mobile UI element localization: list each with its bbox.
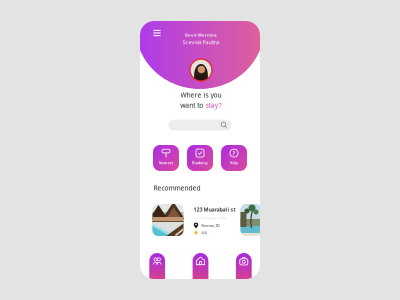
staticText: Nearest [158,160,173,165]
button[interactable]: Menu [151,27,163,39]
staticText: Sleman, ID [201,223,220,228]
staticText: Lorem ipsum dolor [193,215,227,220]
staticText: Help [229,160,238,165]
button[interactable]: Camera [236,253,252,279]
staticText: Recommended [153,184,200,192]
staticText: Good Morning [185,32,217,37]
staticText: want to [180,101,203,110]
button[interactable]: Booking [187,145,213,171]
button[interactable]: Profile [149,253,165,279]
staticText: stay? [206,101,222,110]
button[interactable]: Nearest [153,145,179,171]
staticText: Scevola Paulina [182,39,219,46]
staticText: Booking [192,160,208,165]
button[interactable]: Search destinations [168,119,231,130]
staticText: 123 Muarabali st [193,206,235,213]
staticText: ? [232,150,235,157]
button[interactable]: ? [221,145,247,171]
staticText: 4.8 [201,230,206,235]
button[interactable]: Home [193,253,208,279]
staticText: Where is you [180,90,221,99]
